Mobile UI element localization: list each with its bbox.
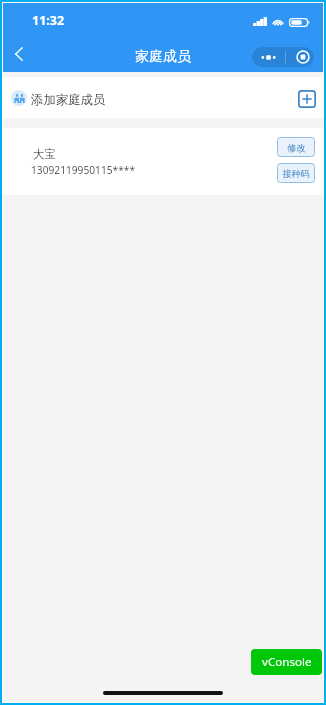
button[interactable]: 添加家庭成员 xyxy=(3,77,323,118)
button[interactable]: vConsole xyxy=(251,649,322,675)
button[interactable]: Back xyxy=(5,40,33,68)
staticText: 添加家庭成员 xyxy=(31,92,106,108)
button[interactable]: 修改 xyxy=(277,137,315,157)
staticText: 11:32 xyxy=(32,12,65,29)
button[interactable]: Add family member xyxy=(295,87,319,111)
staticText: 大宝 xyxy=(33,147,56,161)
staticText: 13092119950115**** xyxy=(31,163,136,177)
button[interactable]: Close xyxy=(286,47,314,67)
button[interactable]: More options xyxy=(252,47,285,67)
staticText: 修改 xyxy=(287,142,306,154)
staticText: 接种码 xyxy=(282,168,310,180)
staticText: 家庭成员 xyxy=(135,48,191,66)
staticText: vConsole xyxy=(262,654,312,670)
button[interactable]: 接种码 xyxy=(277,163,315,183)
